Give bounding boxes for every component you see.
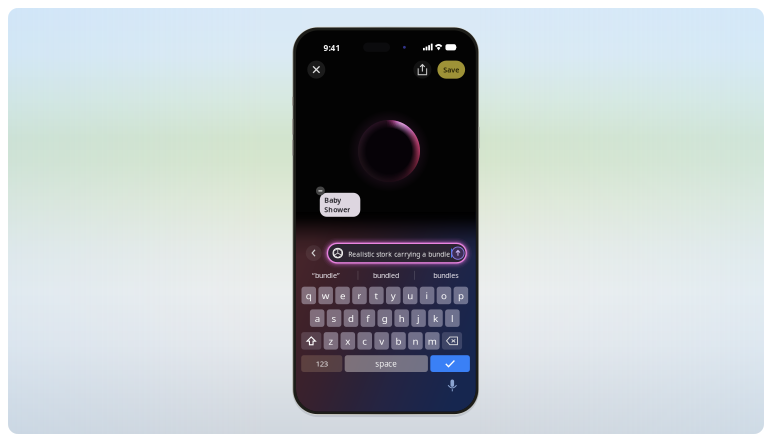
button[interactable]: i xyxy=(420,287,434,304)
staticText: 123 xyxy=(316,358,328,369)
staticText: t xyxy=(374,289,378,302)
button[interactable]: w xyxy=(318,287,333,304)
button[interactable]: Realistic stork carrying a bundle xyxy=(327,243,466,263)
staticText: bundled xyxy=(373,270,399,280)
staticText: x xyxy=(345,334,350,347)
staticText: “bundle” xyxy=(312,270,340,280)
button[interactable]: f xyxy=(361,309,375,327)
staticText: Realistic stork carrying a bundle xyxy=(348,250,450,259)
staticText: s xyxy=(332,311,337,325)
staticText: c xyxy=(362,334,367,347)
button[interactable]: y xyxy=(386,287,401,304)
button[interactable]: j xyxy=(411,309,426,327)
button[interactable]: Share xyxy=(413,61,431,79)
staticText: h xyxy=(399,311,405,325)
staticText: Shower xyxy=(324,205,350,214)
button[interactable]: bundles xyxy=(416,268,476,282)
button[interactable]: bundled xyxy=(356,268,416,282)
staticText: y xyxy=(391,289,396,302)
button[interactable]: d xyxy=(344,309,358,327)
button[interactable]: t xyxy=(369,287,384,304)
button[interactable]: n xyxy=(408,332,423,350)
button[interactable]: b xyxy=(391,332,406,350)
button[interactable]: v xyxy=(374,332,389,350)
staticText: z xyxy=(328,334,333,347)
button[interactable]: Back xyxy=(306,245,322,261)
button[interactable]: m xyxy=(425,332,440,350)
staticText: Save xyxy=(443,65,459,74)
button[interactable]: s xyxy=(327,309,341,327)
button[interactable]: q xyxy=(301,287,316,304)
button[interactable]: p xyxy=(454,287,468,304)
button[interactable]: “bundle” xyxy=(296,268,356,282)
staticText: 9:41 xyxy=(323,42,340,53)
button[interactable]: Done xyxy=(430,355,470,372)
button[interactable]: Numbers xyxy=(301,355,342,372)
button[interactable]: a xyxy=(310,309,324,327)
staticText: j xyxy=(417,311,420,325)
staticText: bundles xyxy=(433,270,458,280)
button[interactable]: g xyxy=(377,309,392,327)
button[interactable]: Close xyxy=(307,61,325,79)
button[interactable]: x xyxy=(341,332,355,350)
staticText: l xyxy=(451,311,454,325)
button[interactable]: e xyxy=(335,287,350,304)
staticText: g xyxy=(382,311,388,325)
staticText: f xyxy=(366,311,369,325)
staticText: m xyxy=(428,334,437,347)
staticText: b xyxy=(395,334,401,347)
staticText: a xyxy=(315,311,320,325)
staticText: o xyxy=(441,289,447,302)
staticText: r xyxy=(357,289,361,302)
button[interactable]: Delete xyxy=(442,332,462,350)
staticText: Baby xyxy=(324,195,341,205)
button[interactable]: Baby xyxy=(320,193,360,217)
button[interactable]: u xyxy=(403,287,417,304)
staticText: space xyxy=(375,358,397,369)
button[interactable]: o xyxy=(437,287,451,304)
staticText: i xyxy=(426,289,429,302)
staticText: n xyxy=(412,334,418,347)
button[interactable]: r xyxy=(352,287,367,304)
button[interactable]: Dictate xyxy=(447,379,458,392)
staticText: w xyxy=(322,289,330,302)
button[interactable]: k xyxy=(428,309,443,327)
button[interactable]: Save xyxy=(437,61,465,79)
button[interactable]: z xyxy=(324,332,338,350)
button[interactable]: c xyxy=(357,332,372,350)
button[interactable]: h xyxy=(394,309,409,327)
button[interactable]: l xyxy=(445,309,460,327)
button[interactable]: Shift xyxy=(301,332,321,350)
staticText: p xyxy=(458,289,464,302)
staticText: d xyxy=(348,311,354,325)
button[interactable]: Remove style xyxy=(316,186,325,195)
staticText: k xyxy=(433,311,438,325)
staticText: v xyxy=(379,334,384,347)
staticText: u xyxy=(407,289,413,302)
button[interactable]: space xyxy=(345,355,428,372)
staticText: e xyxy=(340,289,345,302)
staticText: q xyxy=(306,289,312,302)
